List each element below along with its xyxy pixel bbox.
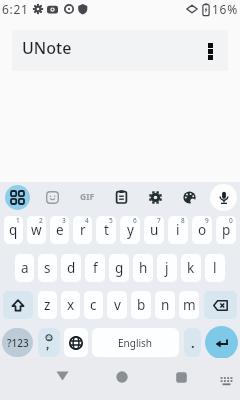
button[interactable]: h [133,254,153,282]
staticText: 16% [212,1,238,17]
staticText: 9 [205,216,209,225]
button[interactable]: e [50,216,69,244]
staticText: k [187,259,195,277]
staticText: z [44,296,51,314]
staticText: GIF [80,191,95,203]
button[interactable] [206,182,240,212]
button[interactable]: English [92,328,179,357]
staticText: l [213,259,217,277]
button[interactable] [138,182,172,212]
button[interactable] [64,328,88,357]
button[interactable]: d [61,254,81,282]
staticText: 3 [62,216,66,225]
button[interactable] [204,291,237,319]
staticText: g [115,259,124,277]
button[interactable]: s [38,254,57,282]
button[interactable]: q [4,216,23,244]
button[interactable]: . [184,328,201,357]
button[interactable]: t [96,216,116,244]
button[interactable]: n [155,291,175,319]
staticText: 2 [39,216,43,225]
button[interactable]: x [61,291,80,319]
staticText: h [139,259,148,277]
button[interactable]: r [73,216,92,244]
staticText: u [150,221,159,239]
button[interactable] [167,363,195,391]
staticText: 1 [16,216,20,225]
button[interactable] [48,362,76,390]
staticText: 4 [85,216,89,225]
button[interactable]: i [168,216,188,244]
staticText: 5 [109,216,113,225]
staticText: v [114,296,121,314]
button[interactable]: k [181,254,201,282]
staticText: r [80,221,86,239]
staticText: w [31,221,42,239]
button[interactable]: m [179,291,199,319]
staticText: p [222,221,231,239]
staticText: . [191,334,195,352]
staticText: m [183,296,196,314]
button[interactable] [3,291,33,319]
staticText: c [90,296,97,314]
button[interactable] [104,182,138,212]
button[interactable] [215,372,237,390]
button[interactable]: GIF [70,182,104,212]
button[interactable]: b [131,291,151,319]
staticText: s [44,259,51,277]
button[interactable] [0,182,35,212]
button[interactable]: o [192,216,212,244]
staticText: ?123 [7,336,29,350]
staticText: q [9,221,18,239]
staticText: t [104,221,109,239]
staticText: UNote [22,37,72,59]
button[interactable] [200,36,220,66]
staticText: 6:21 [2,1,29,17]
button[interactable]: f [85,254,105,282]
staticText: 6 [133,216,137,225]
button[interactable]: y [120,216,140,244]
staticText: x [67,296,75,314]
button[interactable]: a [15,254,34,282]
button[interactable] [172,182,206,212]
button[interactable]: g [109,254,129,282]
button[interactable]: c [84,291,103,319]
button[interactable] [35,182,70,212]
staticText: 0 [229,216,233,225]
button[interactable]: p [216,216,236,244]
button[interactable]: z [38,291,57,319]
staticText: English [118,336,153,350]
staticText: i [176,221,180,239]
button[interactable]: ?123 [2,328,33,357]
button[interactable]: u [144,216,164,244]
staticText: 8 [181,216,185,225]
staticText: a [21,259,29,277]
staticText: d [67,259,76,277]
button[interactable] [108,363,136,391]
staticText: y [127,221,134,239]
staticText: 7 [157,216,161,225]
staticText: o [198,221,207,239]
staticText: e [56,221,64,239]
button[interactable] [205,326,238,359]
button[interactable] [38,328,60,357]
button[interactable]: j [157,254,177,282]
button[interactable]: w [27,216,46,244]
staticText: n [161,296,170,314]
staticText: b [137,296,146,314]
staticText: j [165,259,169,277]
staticText: f [93,259,98,277]
button[interactable]: l [205,254,225,282]
button[interactable]: v [107,291,127,319]
